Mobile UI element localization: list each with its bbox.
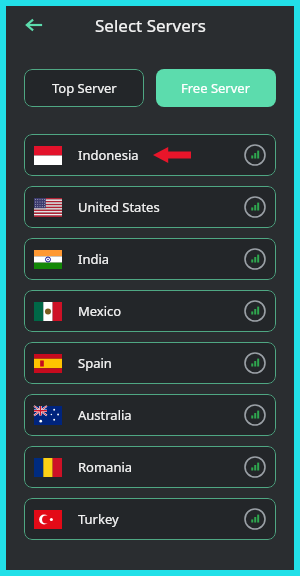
button[interactable]: Indonesia (24, 134, 276, 176)
button[interactable]: Top Server (24, 69, 144, 107)
staticText: Turkey (78, 510, 119, 528)
button[interactable]: Romania (24, 446, 276, 488)
staticText: Spain (78, 354, 112, 372)
staticText: Australia (78, 406, 132, 424)
button[interactable]: Turkey (24, 498, 276, 540)
staticText: Top Server (52, 79, 117, 97)
staticText: United States (78, 198, 160, 216)
button[interactable]: Australia (24, 394, 276, 436)
button[interactable]: Free Server (156, 69, 276, 107)
button[interactable]: Mexico (24, 290, 276, 332)
staticText: Mexico (78, 302, 122, 320)
button[interactable]: India (24, 238, 276, 280)
staticText: India (78, 250, 110, 268)
staticText: Select Servers (95, 14, 206, 37)
button[interactable]: Back (20, 11, 48, 39)
staticText: Romania (78, 458, 133, 476)
staticText: Free Server (181, 79, 251, 97)
staticText: Indonesia (78, 146, 139, 164)
button[interactable]: United States (24, 186, 276, 228)
button[interactable]: Spain (24, 342, 276, 384)
